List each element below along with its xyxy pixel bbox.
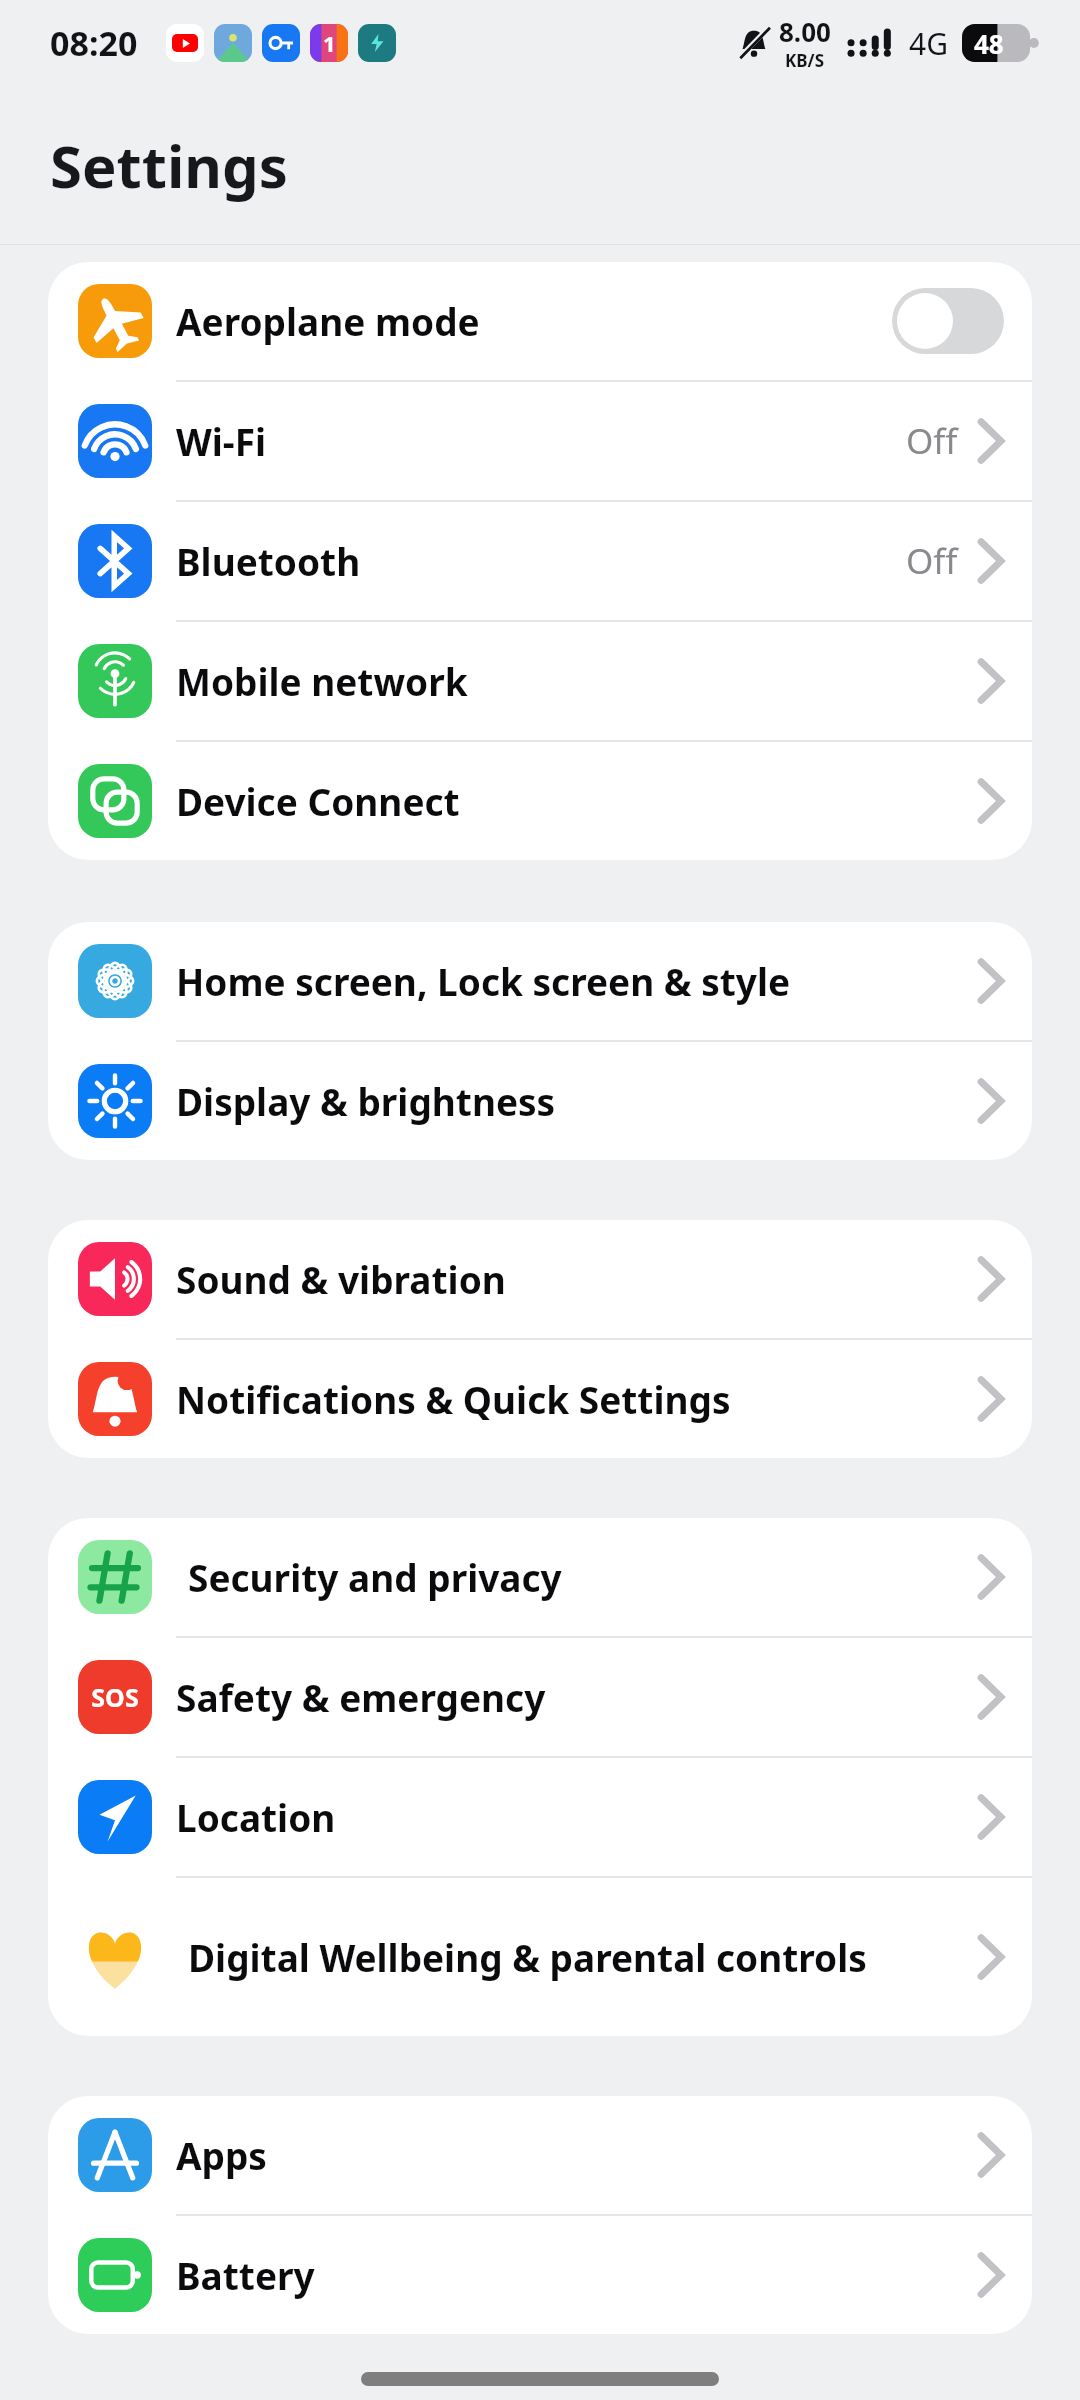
staticText: Wi-Fi [176,416,906,466]
staticText: Display & brightness [176,1076,978,1126]
staticText: Security and privacy [188,1552,978,1602]
button[interactable]: Aeroplane mode [48,262,1032,382]
staticText: Bluetooth [176,536,906,586]
button[interactable]: Home screen, Lock screen & style [48,922,1032,1042]
staticText: 08:20 [50,20,138,66]
staticText: SOS [91,1680,139,1714]
button[interactable]: Mobile network [48,622,1032,742]
staticText: Location [176,1792,978,1842]
staticText: Apps [176,2130,978,2180]
button[interactable]: Notifications & Quick Settings [48,1340,1032,1458]
staticText: Settings [50,126,288,205]
button[interactable]: Display & brightness [48,1042,1032,1160]
staticText: Notifications & Quick Settings [176,1374,978,1424]
staticText: 8.00 [779,14,831,49]
button[interactable]: Security and privacy [48,1518,1032,1638]
button[interactable]: Device Connect [48,742,1032,860]
button[interactable]: Wi-Fi [48,382,1032,502]
button[interactable]: SOS [48,1638,1032,1758]
staticText: Off [906,417,958,465]
staticText: Battery [176,2250,978,2300]
staticText: Off [906,537,958,585]
button[interactable]: Bluetooth [48,502,1032,622]
button[interactable]: Apps [48,2096,1032,2216]
staticText: 1 [323,28,336,58]
staticText: Safety & emergency [176,1672,978,1722]
staticText: Digital Wellbeing & parental controls [188,1932,978,1982]
staticText: 4G [909,23,948,64]
staticText: 48 [974,26,1004,61]
staticText: Home screen, Lock screen & style [176,956,978,1006]
staticText: Sound & vibration [176,1254,978,1304]
staticText: KB/S [785,49,825,72]
staticText: Aeroplane mode [176,296,892,346]
staticText: Mobile network [176,656,978,706]
button[interactable]: Battery [48,2216,1032,2334]
button[interactable]: Digital Wellbeing & parental controls [48,1878,1032,2036]
staticText: Device Connect [176,776,978,826]
button[interactable]: Sound & vibration [48,1220,1032,1340]
button[interactable]: Aeroplane mode toggle, off [892,288,1004,354]
button[interactable]: Location [48,1758,1032,1878]
